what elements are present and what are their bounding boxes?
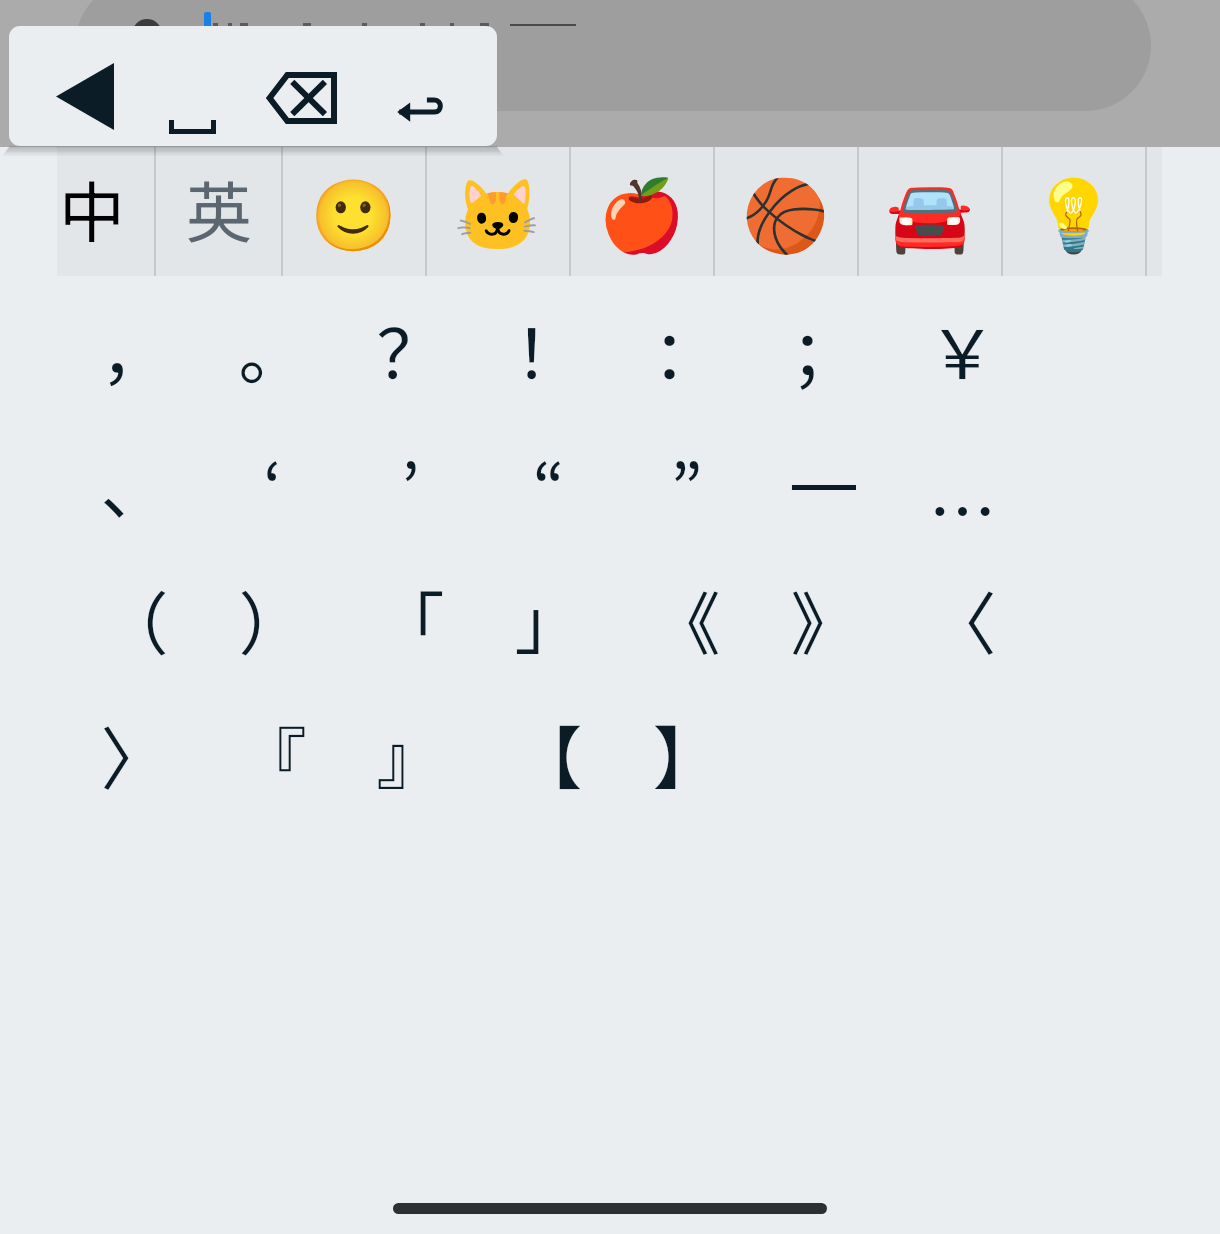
staticText: ’ <box>401 435 420 533</box>
staticText: 《 <box>652 570 721 668</box>
button[interactable]: 』 <box>341 686 479 821</box>
button[interactable]: 。 <box>203 281 341 416</box>
button[interactable]: ！ <box>479 281 617 416</box>
button[interactable]: 、 <box>65 416 203 551</box>
button[interactable]: 🚘 <box>859 147 1001 276</box>
button[interactable]: 🐱 <box>427 147 569 276</box>
button[interactable]: 💡 <box>1003 147 1145 276</box>
staticText: 』 <box>376 705 445 803</box>
staticText: 『 <box>238 705 307 803</box>
button[interactable]: Space <box>131 26 253 146</box>
button[interactable]: ？ <box>341 281 479 416</box>
staticText: ！ <box>514 300 583 398</box>
staticText: … <box>928 458 997 556</box>
button[interactable]: 《 <box>617 551 755 686</box>
staticText: ； <box>790 300 859 398</box>
button[interactable]: — <box>755 416 893 551</box>
staticText: “ <box>532 435 565 533</box>
staticText: 🍎 <box>598 175 686 257</box>
staticText: 》 <box>790 570 859 668</box>
button[interactable]: 🍎 <box>571 147 713 276</box>
staticText: 🙂 <box>310 175 398 257</box>
button[interactable]: ） <box>203 551 341 686</box>
button[interactable]: ‘ <box>203 416 341 551</box>
button[interactable]: ； <box>755 281 893 416</box>
button[interactable]: 🙂 <box>283 147 425 276</box>
staticText: ” <box>670 435 703 533</box>
button[interactable]: Enter <box>375 26 497 146</box>
staticText: 🚘 <box>886 175 974 257</box>
button[interactable]: 〈 <box>893 551 1031 686</box>
staticText: 🏀 <box>742 175 830 257</box>
staticText: 。 <box>238 300 307 398</box>
button[interactable]: 🏀 <box>715 147 857 276</box>
button[interactable]: ’ <box>341 416 479 551</box>
staticText: 」 <box>514 570 583 668</box>
staticText: （ <box>100 570 169 668</box>
staticText: ： <box>652 300 721 398</box>
button[interactable]: 中 <box>57 147 154 276</box>
button[interactable]: 「 <box>341 551 479 686</box>
staticText: ‘ <box>263 435 282 533</box>
button[interactable]: ￥ <box>893 281 1031 416</box>
staticText: ） <box>238 570 307 668</box>
staticText: 【 <box>514 705 583 803</box>
button[interactable]: “ <box>479 416 617 551</box>
staticText: 💡 <box>1030 175 1118 257</box>
staticText: — <box>788 417 860 533</box>
staticText: 〈 <box>928 570 997 668</box>
button[interactable]: 》 <box>755 551 893 686</box>
staticText: 中 <box>59 160 125 256</box>
button[interactable]: ” <box>617 416 755 551</box>
staticText: ￥ <box>928 300 997 398</box>
button[interactable]: 】 <box>617 686 755 821</box>
button[interactable]: 【 <box>479 686 617 821</box>
button[interactable]: ： <box>617 281 755 416</box>
button[interactable]: ， <box>65 281 203 416</box>
staticText: 英 <box>186 160 252 256</box>
staticText: 】 <box>652 705 721 803</box>
button[interactable]: （ <box>65 551 203 686</box>
button[interactable]: 英 <box>156 147 281 276</box>
staticText: ， <box>100 300 169 398</box>
staticText: ？ <box>376 300 445 398</box>
staticText: 「 <box>376 570 445 668</box>
staticText: 、 <box>100 435 169 533</box>
staticText: 🐱 <box>454 175 542 257</box>
button[interactable]: 〉 <box>65 686 203 821</box>
button[interactable]: 『 <box>203 686 341 821</box>
staticText: 〉 <box>100 705 169 803</box>
button[interactable]: Backspace <box>253 26 375 146</box>
button[interactable]: … <box>893 416 1031 551</box>
button[interactable]: Move cursor left <box>9 26 131 146</box>
button[interactable]: 」 <box>479 551 617 686</box>
